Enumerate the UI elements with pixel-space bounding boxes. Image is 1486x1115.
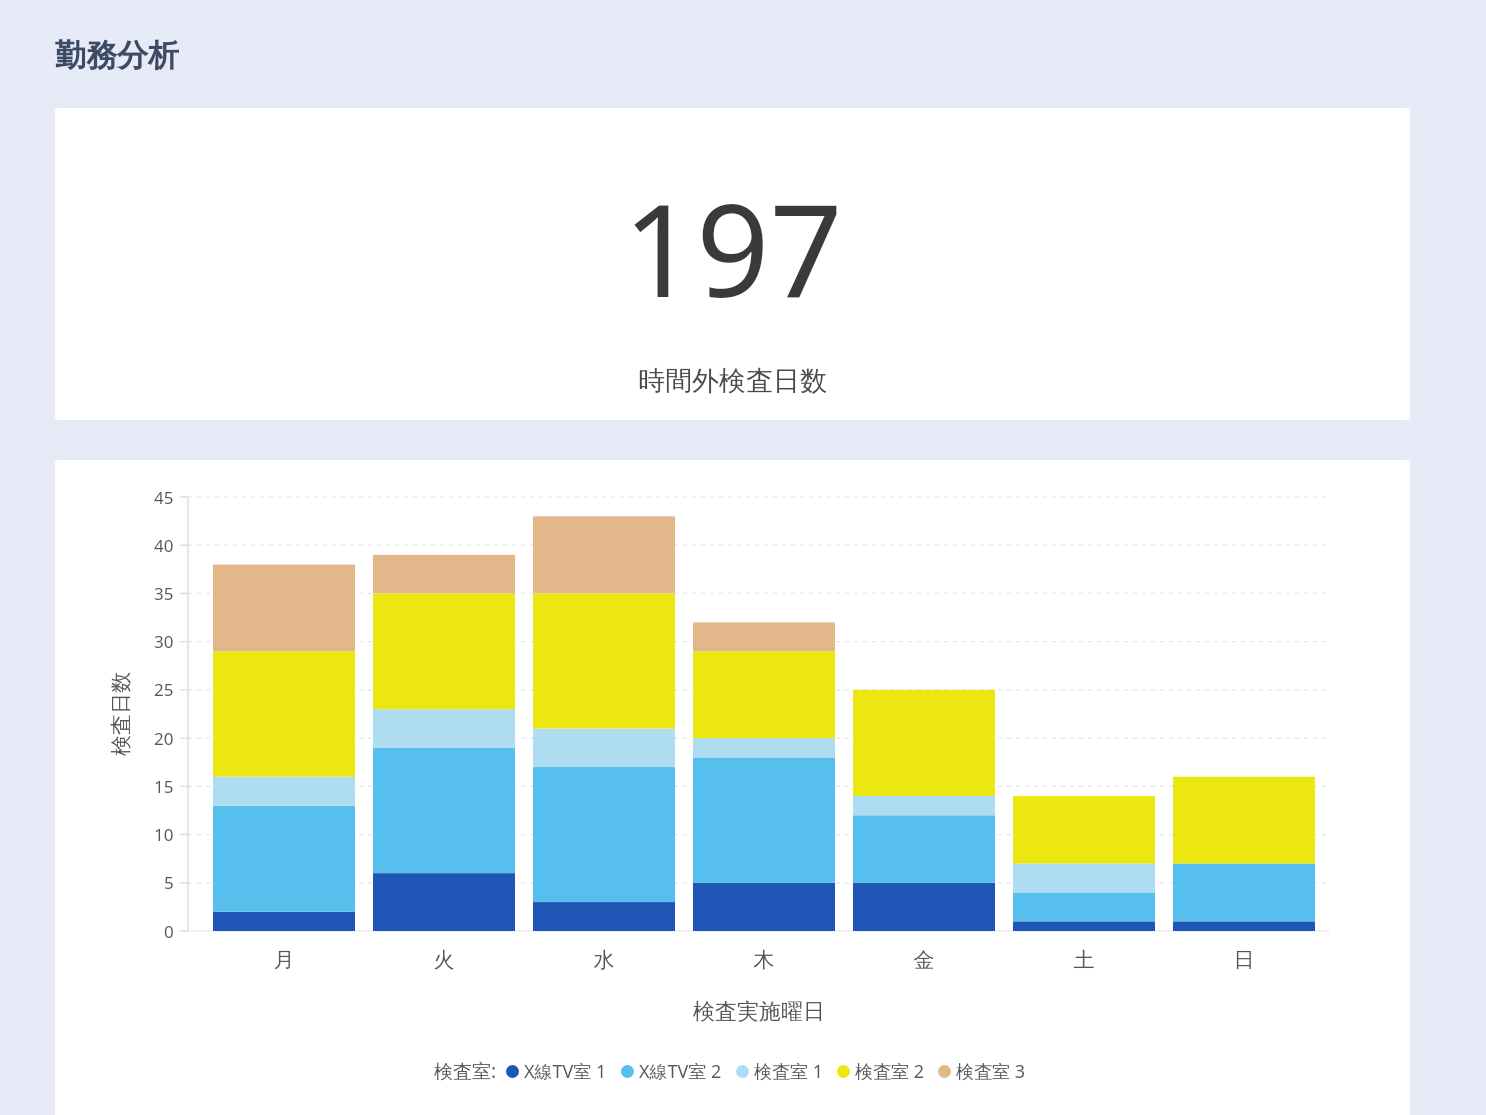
staticText: 勤務分析 bbox=[55, 36, 179, 75]
button[interactable]: X線TV室 1 bbox=[506, 1059, 621, 1084]
button[interactable]: 検査室 2 bbox=[837, 1059, 938, 1084]
staticText: 検査室 1 bbox=[754, 1059, 823, 1084]
staticText: 検査室: bbox=[434, 1058, 497, 1084]
staticText: 検査室 2 bbox=[855, 1059, 924, 1084]
staticText: 時間外検査日数 bbox=[638, 364, 827, 398]
button[interactable]: 197 bbox=[55, 108, 1410, 420]
staticText: X線TV室 1 bbox=[524, 1059, 607, 1084]
button[interactable]: 検査室 3 bbox=[938, 1059, 1039, 1084]
button[interactable]: 勤務分析 bbox=[55, 36, 179, 75]
staticText: X線TV室 2 bbox=[639, 1059, 722, 1084]
staticText: 197 bbox=[623, 160, 843, 334]
staticText: 検査室 3 bbox=[956, 1059, 1025, 1084]
button[interactable]: 検査室 1 bbox=[736, 1059, 837, 1084]
button[interactable]: 検査室: bbox=[55, 460, 1410, 1115]
button[interactable]: X線TV室 2 bbox=[621, 1059, 736, 1084]
